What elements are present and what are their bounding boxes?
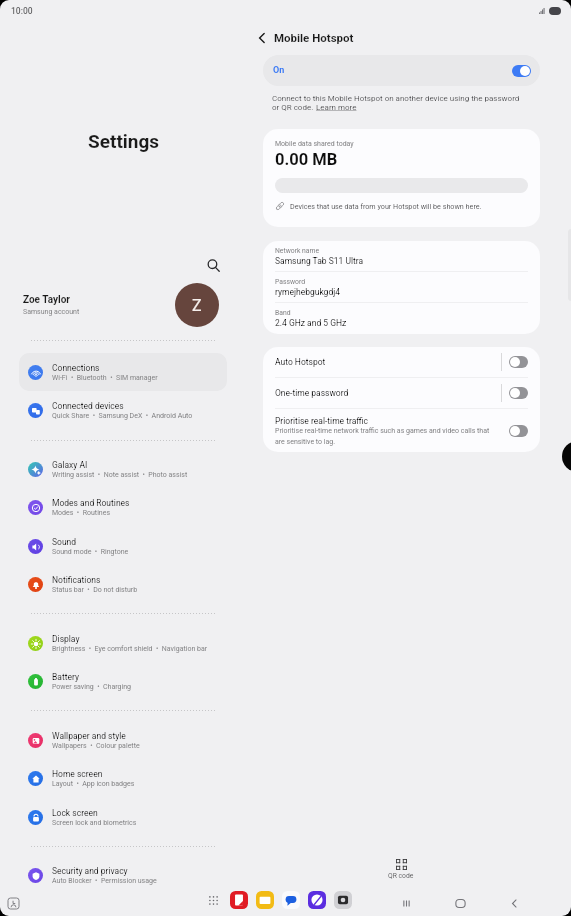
staticText: Band (275, 309, 291, 317)
staticText: Layout • App icon badges (52, 780, 135, 788)
button[interactable] (19, 391, 247, 429)
button[interactable]: Network name (263, 241, 540, 271)
button[interactable]: QR code (385, 859, 417, 880)
button[interactable]: Switch on (512, 65, 531, 77)
button[interactable] (19, 624, 247, 662)
staticText: Wallpaper and style (52, 731, 126, 741)
staticText: QR code (388, 872, 414, 880)
button[interactable]: Auto Hotspot (263, 347, 540, 377)
button[interactable] (19, 527, 247, 565)
button[interactable]: One-time password (263, 378, 540, 408)
staticText: Notifications (52, 575, 101, 585)
staticText: or QR code. (272, 103, 316, 112)
button[interactable]: Switch off (509, 425, 528, 437)
staticText: Modes and Routines (52, 498, 130, 508)
button[interactable]: Search (201, 253, 225, 277)
staticText: Samsung Tab S11 Ultra (275, 256, 364, 266)
staticText: Quick Share • Samsung DeX • Android Auto (52, 412, 193, 420)
button[interactable]: Band (263, 303, 540, 333)
button[interactable]: All apps (203, 890, 223, 910)
button[interactable]: Prioritise real-time traffic (263, 409, 540, 452)
staticText: Brightness • Eye comfort shield • Naviga… (52, 645, 208, 653)
staticText: Connections (52, 363, 100, 373)
button[interactable]: Learn more (316, 103, 357, 112)
staticText: Auto Hotspot (275, 357, 326, 367)
staticText: Mobile data shared today (275, 140, 354, 148)
button[interactable] (19, 353, 247, 391)
staticText: Battery (52, 672, 79, 682)
button[interactable] (19, 450, 247, 488)
button[interactable]: Internet (308, 891, 326, 909)
staticText: Sound mode • Ringtone (52, 548, 129, 556)
staticText: Mobile Hotspot (274, 31, 354, 44)
staticText: Samsung account (23, 308, 80, 316)
staticText: 0.00 MB (275, 150, 338, 169)
staticText: 10:00 (11, 6, 33, 16)
button[interactable]: Back (500, 889, 528, 916)
staticText: Modes • Routines (52, 509, 111, 517)
staticText: 2.4 GHz and 5 GHz (275, 318, 347, 328)
staticText: Zoe Taylor (23, 294, 70, 306)
button[interactable]: Zoe Taylor (0, 283, 248, 327)
staticText: Lock screen (52, 808, 98, 818)
staticText: Writing assist • Note assist • Photo ass… (52, 471, 188, 479)
staticText: rymejhebgukgdj4 (275, 287, 340, 297)
button[interactable] (19, 856, 247, 894)
staticText: Network name (275, 247, 320, 255)
button[interactable] (19, 798, 247, 836)
staticText: Power saving • Charging (52, 683, 131, 691)
staticText: Devices that use data from your Hotspot … (290, 202, 482, 210)
staticText: Auto Blocker • Permission usage (52, 877, 157, 885)
button[interactable]: Home (446, 889, 474, 916)
staticText: Connect to this Mobile Hotspot on anothe… (272, 94, 520, 103)
staticText: Wallpapers • Colour palette (52, 742, 140, 750)
button[interactable] (19, 488, 247, 526)
button[interactable]: Switch off (509, 356, 528, 368)
staticText: Wi-Fi • Bluetooth • SIM manager (52, 374, 158, 382)
button[interactable]: Recent screenshot (3, 893, 23, 913)
button[interactable]: My Files (256, 891, 274, 909)
button[interactable]: Samsung Notes (230, 891, 248, 909)
staticText: Home screen (52, 769, 103, 779)
button[interactable]: On (263, 55, 540, 86)
staticText: Status bar • Do not disturb (52, 586, 138, 594)
staticText: Security and privacy (52, 866, 128, 876)
button[interactable] (19, 565, 247, 603)
staticText: Sound (52, 537, 77, 547)
button[interactable]: Messages (282, 891, 300, 909)
button[interactable]: Switch off (509, 387, 528, 399)
button[interactable]: Back (250, 26, 274, 50)
staticText: Prioritise real-time traffic (275, 416, 369, 426)
staticText: Z (192, 296, 202, 315)
staticText: On (273, 65, 285, 76)
staticText: Settings (88, 130, 160, 152)
button[interactable]: Password (263, 272, 540, 302)
staticText: Connected devices (52, 401, 124, 411)
staticText: Password (275, 278, 306, 286)
staticText: Galaxy AI (52, 460, 88, 470)
staticText: Display (52, 634, 80, 644)
button[interactable] (19, 662, 247, 700)
button[interactable]: Camera (334, 891, 352, 909)
button[interactable]: Recents (392, 889, 420, 916)
staticText: One-time password (275, 388, 349, 398)
staticText: Prioritise real-time network traffic suc… (275, 427, 498, 446)
button[interactable] (19, 759, 247, 797)
button[interactable] (19, 721, 247, 759)
staticText: Screen lock and biometrics (52, 819, 137, 827)
